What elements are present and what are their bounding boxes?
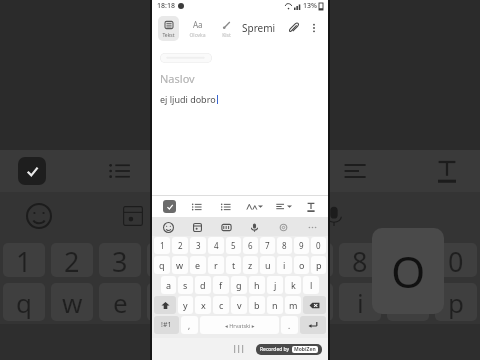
button[interactable]: Checklist [158, 197, 180, 216]
button[interactable]: Text size [243, 197, 265, 216]
button[interactable]: n [267, 296, 283, 314]
staticText: f [219, 279, 223, 291]
staticText: p [448, 285, 464, 320]
button[interactable]: g [231, 276, 247, 294]
button[interactable]: z [243, 256, 258, 274]
staticText: l [310, 279, 313, 291]
staticText: 1 [160, 240, 165, 251]
button[interactable]: Backspace [303, 296, 326, 314]
staticText: Naslov [160, 71, 195, 86]
staticText: o [400, 285, 416, 320]
button[interactable]: h [249, 276, 265, 294]
staticText: i [357, 285, 364, 320]
button[interactable]: Emoji [160, 219, 176, 235]
staticText: 13% [303, 1, 317, 11]
staticText: m [289, 299, 298, 311]
staticText: v [237, 299, 242, 311]
button[interactable]: Kist [216, 16, 237, 41]
staticText: 18:18 [157, 1, 175, 11]
button[interactable]: 1 [154, 237, 170, 254]
button[interactable]: , [181, 316, 198, 334]
button[interactable]: t [226, 256, 241, 274]
button[interactable]: Text style [300, 197, 322, 216]
staticText: 9 [299, 240, 304, 251]
button[interactable]: ◂ Hrvatski ▸ [200, 316, 279, 334]
button[interactable]: Bullet list [186, 197, 208, 216]
button[interactable]: Aa [185, 16, 210, 41]
button[interactable]: Shift [154, 296, 176, 314]
button[interactable]: e [190, 256, 206, 274]
button[interactable]: a [161, 276, 176, 294]
staticText: u [265, 259, 271, 271]
button[interactable]: 9 [294, 237, 309, 254]
staticText: . [288, 320, 291, 331]
staticText: 6 [248, 240, 253, 251]
button[interactable]: 5 [226, 237, 241, 254]
staticText: ◂ Hrvatski ▸ [225, 322, 255, 329]
staticText: 3 [196, 240, 201, 251]
button[interactable]: 0 [311, 237, 326, 254]
button[interactable]: c [213, 296, 229, 314]
button[interactable]: More [304, 219, 320, 235]
button[interactable]: Spremi [239, 18, 279, 38]
button[interactable]: j [267, 276, 283, 294]
staticText: x [201, 299, 206, 311]
button[interactable]: l [303, 276, 319, 294]
staticText: w [62, 285, 83, 320]
button[interactable] [160, 53, 212, 63]
staticText: n [272, 299, 278, 311]
staticText: Olovka [189, 32, 206, 39]
staticText: b [254, 299, 260, 311]
button[interactable]: 7 [260, 237, 275, 254]
button[interactable]: b [249, 296, 265, 314]
button[interactable]: Enter [300, 316, 326, 334]
button[interactable]: x [195, 296, 211, 314]
button[interactable]: i [277, 256, 292, 274]
button[interactable]: More options [306, 20, 322, 36]
button[interactable]: w [172, 256, 188, 274]
button[interactable]: q [154, 256, 170, 274]
button[interactable]: Paragraph align [272, 197, 294, 216]
button[interactable]: s [178, 276, 193, 294]
button[interactable]: Numbered list [215, 197, 237, 216]
button[interactable]: v [231, 296, 247, 314]
button[interactable]: d [195, 276, 211, 294]
button[interactable]: y [178, 296, 193, 314]
staticText: 8 [282, 240, 287, 251]
button[interactable]: r [208, 256, 224, 274]
staticText: 0 [316, 240, 321, 251]
button[interactable]: GIF [218, 219, 234, 235]
button[interactable]: Stickers [189, 219, 205, 235]
staticText: 3 [112, 243, 128, 277]
staticText: ej ljudi dobro [160, 93, 216, 105]
button[interactable]: Voice input [246, 219, 262, 235]
staticText: j [274, 279, 277, 291]
button[interactable]: . [281, 316, 298, 334]
button[interactable]: Attach [285, 19, 303, 37]
button[interactable]: m [285, 296, 301, 314]
staticText: Aa [193, 19, 203, 30]
staticText: 2 [178, 240, 183, 251]
button[interactable]: u [260, 256, 275, 274]
button[interactable]: Settings [275, 219, 291, 235]
staticText: t [232, 259, 236, 271]
staticText: 2 [64, 243, 80, 277]
staticText: 0 [448, 243, 464, 277]
staticText: d [200, 279, 206, 291]
button[interactable]: 2 [172, 237, 188, 254]
staticText: g [236, 279, 242, 291]
button[interactable]: k [285, 276, 301, 294]
button[interactable]: 3 [190, 237, 206, 254]
button[interactable]: 6 [243, 237, 258, 254]
button[interactable]: 8 [277, 237, 292, 254]
staticText: e [113, 285, 128, 320]
button[interactable]: Symbols [154, 316, 179, 334]
button[interactable]: 4 [208, 237, 224, 254]
button[interactable]: p [311, 256, 326, 274]
staticText: q [159, 259, 165, 271]
staticText: i [283, 259, 286, 271]
button[interactable]: o [294, 256, 309, 274]
button[interactable]: f [213, 276, 229, 294]
button[interactable]: Tekst [158, 16, 179, 41]
staticText: h [254, 279, 260, 291]
